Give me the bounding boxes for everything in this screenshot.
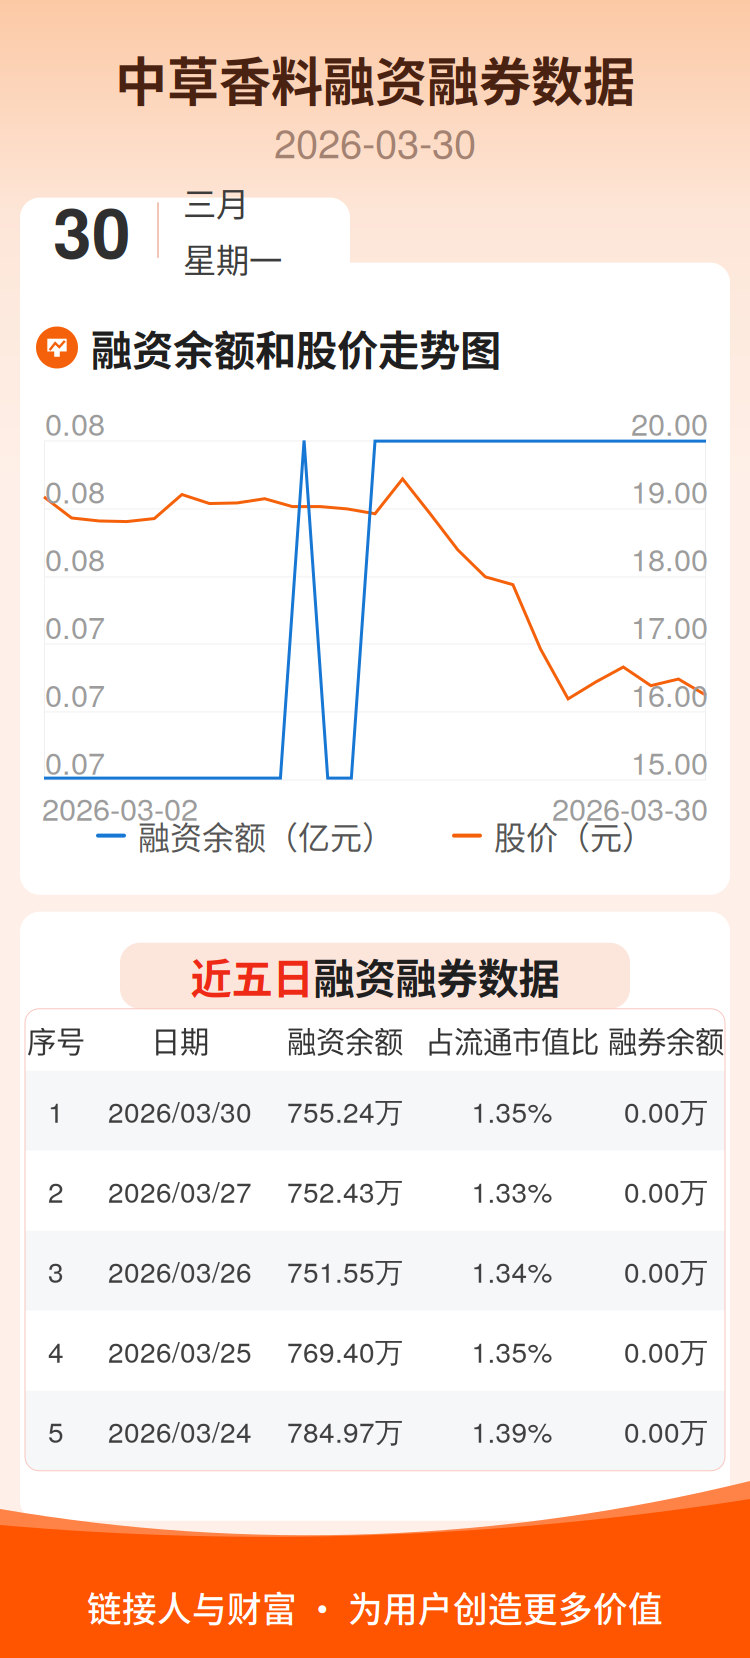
staticText: 三月: [183, 178, 249, 226]
staticText: 2026/03/25: [108, 1331, 252, 1371]
staticText: 0.07: [45, 604, 105, 648]
staticText: 0.00万: [624, 1331, 708, 1371]
staticText: 中草香料融资融券数据: [115, 41, 635, 116]
staticText: 0.08: [45, 536, 105, 580]
staticText: 755.24万: [287, 1091, 403, 1131]
staticText: 日期: [151, 1018, 209, 1061]
staticText: 2026/03/30: [108, 1091, 252, 1131]
staticText: 2026/03/26: [108, 1251, 252, 1291]
staticText: 20.00: [631, 400, 708, 444]
staticText: 2026/03/27: [108, 1171, 252, 1211]
staticText: 1.35%: [471, 1331, 552, 1371]
staticText: 融资融券数据: [313, 946, 559, 1006]
staticText: 链接人与财富 · 为用户创造更多价值: [87, 1582, 663, 1632]
staticText: 1: [48, 1091, 64, 1131]
staticText: 0.00万: [624, 1171, 708, 1211]
staticText: 2026-03-02: [42, 785, 198, 829]
staticText: 0.07: [45, 672, 105, 716]
staticText: 16.00: [631, 672, 708, 716]
staticText: 2026-03-30: [274, 112, 476, 170]
staticText: 1.34%: [471, 1251, 552, 1291]
staticText: 17.00: [631, 604, 708, 648]
staticText: 3: [48, 1251, 64, 1291]
staticText: 18.00: [631, 536, 708, 580]
staticText: 30: [53, 180, 131, 280]
staticText: 融资余额: [287, 1018, 403, 1061]
staticText: 751.55万: [287, 1251, 403, 1291]
staticText: 0.00万: [624, 1251, 708, 1291]
staticText: 0.08: [45, 468, 105, 512]
staticText: 融券余额: [608, 1018, 724, 1061]
staticText: 5: [48, 1411, 64, 1451]
staticText: 融资余额和股价走势图: [91, 318, 501, 377]
staticText: 15.00: [631, 739, 708, 783]
staticText: 1.33%: [471, 1171, 552, 1211]
staticText: 2026/03/24: [108, 1411, 252, 1451]
staticText: 星期一: [183, 234, 282, 282]
staticText: 0.07: [45, 739, 105, 783]
staticText: 1.39%: [471, 1411, 552, 1451]
staticText: 股价（元）: [494, 812, 654, 859]
staticText: 1.35%: [471, 1091, 552, 1131]
staticText: 0.08: [45, 400, 105, 444]
staticText: 2026-03-30: [552, 785, 708, 829]
staticText: 769.40万: [287, 1331, 403, 1371]
staticText: 4: [48, 1331, 64, 1371]
staticText: 784.97万: [287, 1411, 403, 1451]
staticText: 2: [48, 1171, 64, 1211]
staticText: 0.00万: [624, 1411, 708, 1451]
staticText: 序号: [27, 1018, 85, 1061]
staticText: 融资余额（亿元）: [138, 812, 394, 859]
staticText: 0.00万: [624, 1091, 708, 1131]
staticText: 19.00: [631, 468, 708, 512]
staticText: 752.43万: [287, 1171, 403, 1211]
staticText: 近五日: [190, 946, 313, 1006]
staticText: 占流通市值比: [425, 1018, 599, 1061]
